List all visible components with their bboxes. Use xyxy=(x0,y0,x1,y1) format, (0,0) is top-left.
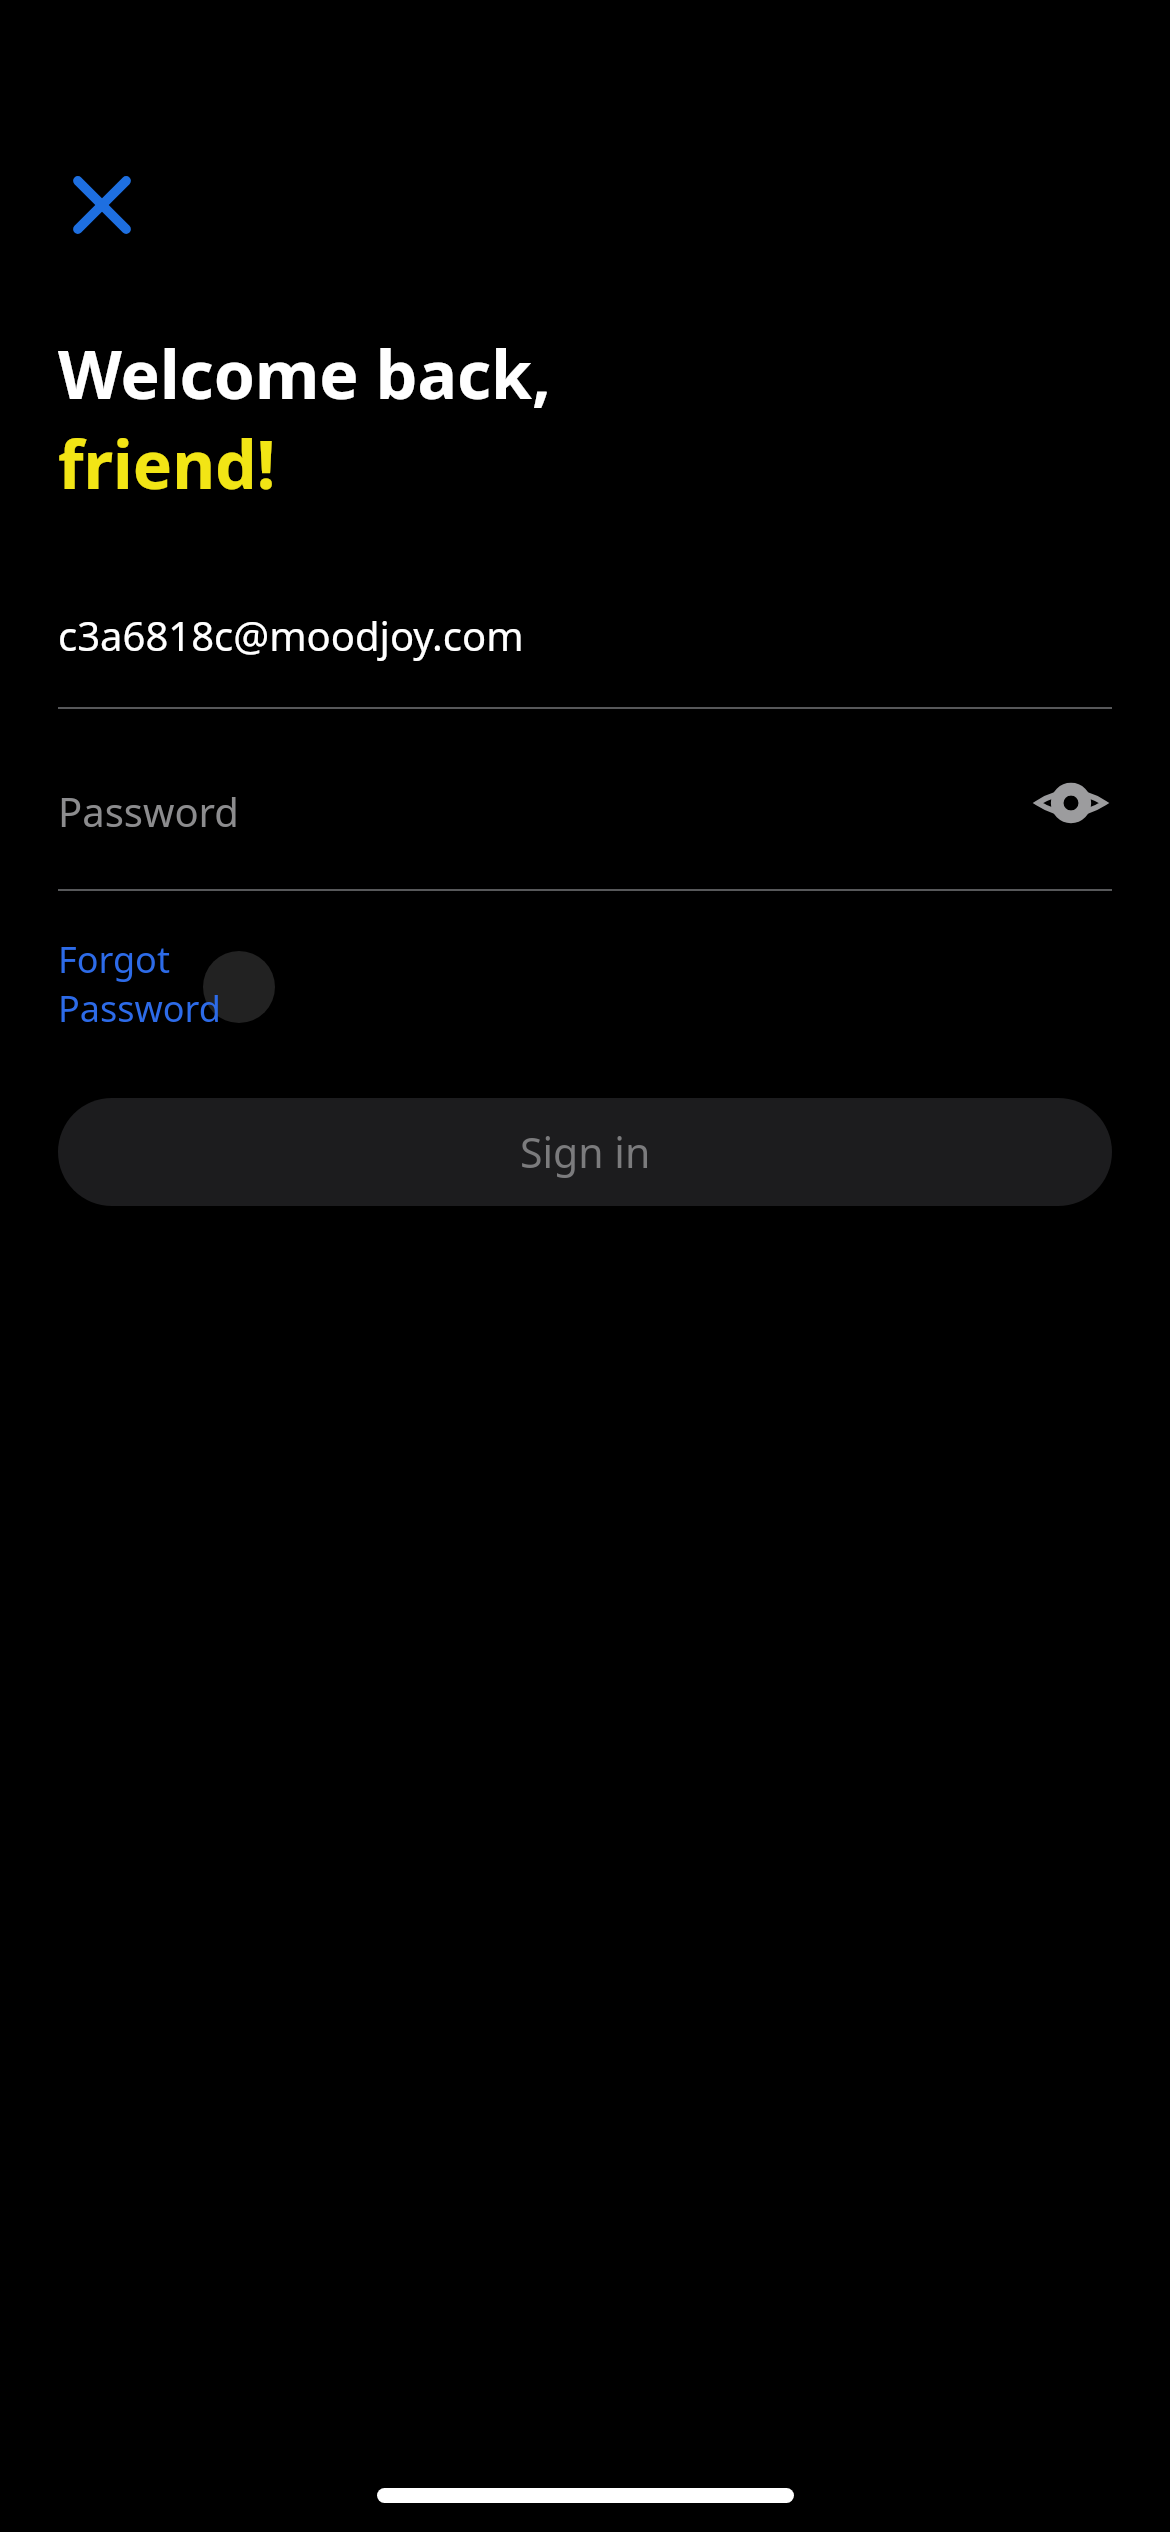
staticText: Password xyxy=(58,784,239,838)
button[interactable]: Show password xyxy=(1011,743,1131,863)
button[interactable]: Password xyxy=(58,733,1112,889)
staticText: c3a6818c@moodjoy.com xyxy=(58,608,524,662)
staticText: Forgot Password xyxy=(58,935,338,1023)
staticText: Sign in xyxy=(520,1124,651,1180)
button[interactable]: Close xyxy=(36,139,168,271)
staticText: Welcome back, xyxy=(58,328,551,418)
staticText: friend! xyxy=(58,418,276,508)
button[interactable]: Sign in xyxy=(58,1098,1112,1206)
button[interactable]: Forgot Password xyxy=(58,935,338,1023)
button[interactable]: c3a6818c@moodjoy.com xyxy=(58,560,1112,710)
